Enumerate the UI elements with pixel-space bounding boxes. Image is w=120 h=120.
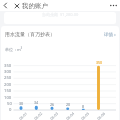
- staticText: 用水流量（百万抄表）: [5, 31, 55, 37]
- staticText: 100: [4, 95, 12, 101]
- button[interactable]: Back: [0, 0, 11, 11]
- staticText: 250: [4, 75, 12, 81]
- staticText: 详情: [104, 32, 113, 38]
- staticText: 05-04: [65, 110, 75, 120]
- button[interactable]: Close: [11, 0, 22, 11]
- staticText: 8: [82, 104, 85, 109]
- staticText: 0: [9, 107, 12, 113]
- staticText: 20: [66, 102, 71, 107]
- staticText: 350: [4, 63, 12, 69]
- staticText: 34: [34, 100, 39, 105]
- staticText: 350: [96, 60, 103, 65]
- button[interactable]: More options: [107, 0, 120, 11]
- staticText: 50: [7, 101, 12, 107]
- staticText: 150: [4, 88, 12, 94]
- staticText: 05-05: [80, 110, 90, 120]
- staticText: 单位：m³: [5, 47, 23, 52]
- staticText: 26: [50, 102, 55, 107]
- staticText: 05-06: [96, 110, 106, 120]
- staticText: 05-02: [33, 110, 43, 120]
- staticText: 我的账户: [22, 2, 48, 10]
- staticText: 300: [4, 69, 12, 75]
- staticText: 200: [4, 82, 12, 88]
- staticText: 05-03: [49, 110, 59, 120]
- button[interactable]: 详情: [104, 32, 117, 38]
- staticText: 当前余额 ¥1,280.00: [42, 12, 79, 17]
- staticText: 05-01: [18, 110, 28, 120]
- staticText: 30: [19, 101, 24, 106]
